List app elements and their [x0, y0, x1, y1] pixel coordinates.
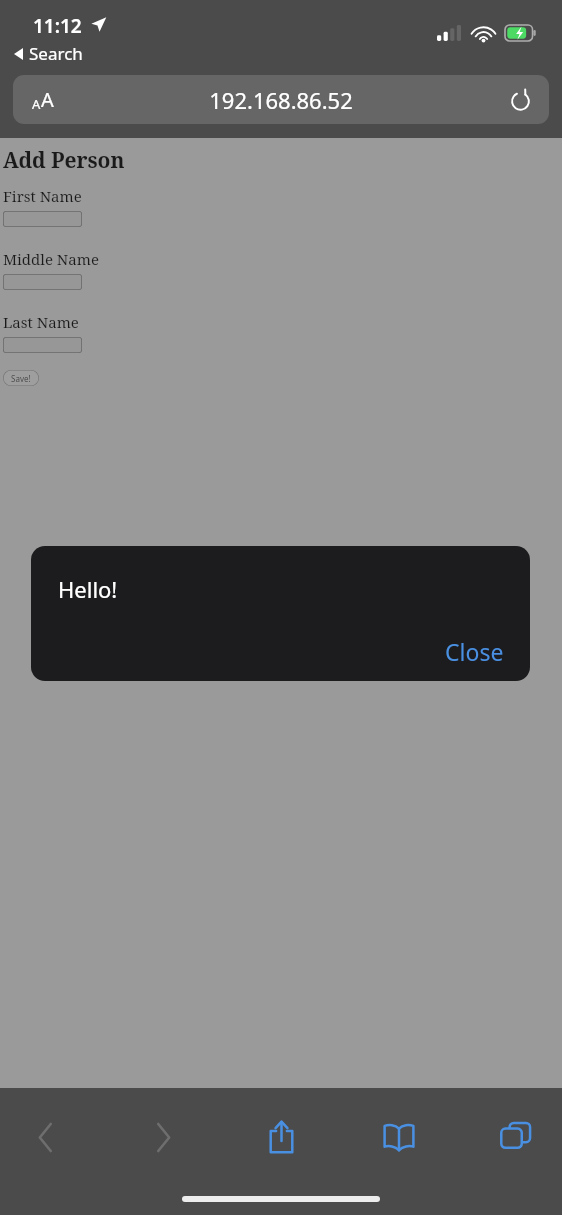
button[interactable]: Back — [8, 1113, 82, 1161]
button[interactable]: Close — [433, 630, 516, 673]
button[interactable] — [3, 211, 82, 227]
staticText: 11:12 — [33, 13, 82, 39]
staticText: Close — [445, 636, 504, 667]
staticText: Search — [29, 42, 83, 65]
button[interactable]: Share — [244, 1113, 318, 1161]
button[interactable]: Search — [10, 40, 87, 67]
staticText: A — [32, 95, 41, 113]
button[interactable]: Forward — [126, 1113, 200, 1161]
staticText: A — [41, 86, 54, 113]
button[interactable]: Text size options — [30, 84, 56, 115]
button[interactable]: Reload page — [505, 85, 535, 115]
staticText: Add Person — [3, 146, 125, 175]
staticText: First Name — [3, 186, 82, 206]
button[interactable]: Save! — [3, 370, 39, 386]
staticText: Middle Name — [3, 249, 99, 269]
staticText: 192.168.86.52 — [209, 85, 353, 115]
button[interactable] — [3, 337, 82, 353]
staticText: Last Name — [3, 312, 79, 332]
staticText: Save! — [11, 373, 31, 384]
button[interactable]: Tabs — [479, 1113, 553, 1161]
button[interactable] — [3, 274, 82, 290]
staticText: Hello! — [58, 574, 118, 604]
button[interactable]: Text size options — [13, 75, 549, 124]
button[interactable]: Bookmarks — [362, 1113, 436, 1161]
